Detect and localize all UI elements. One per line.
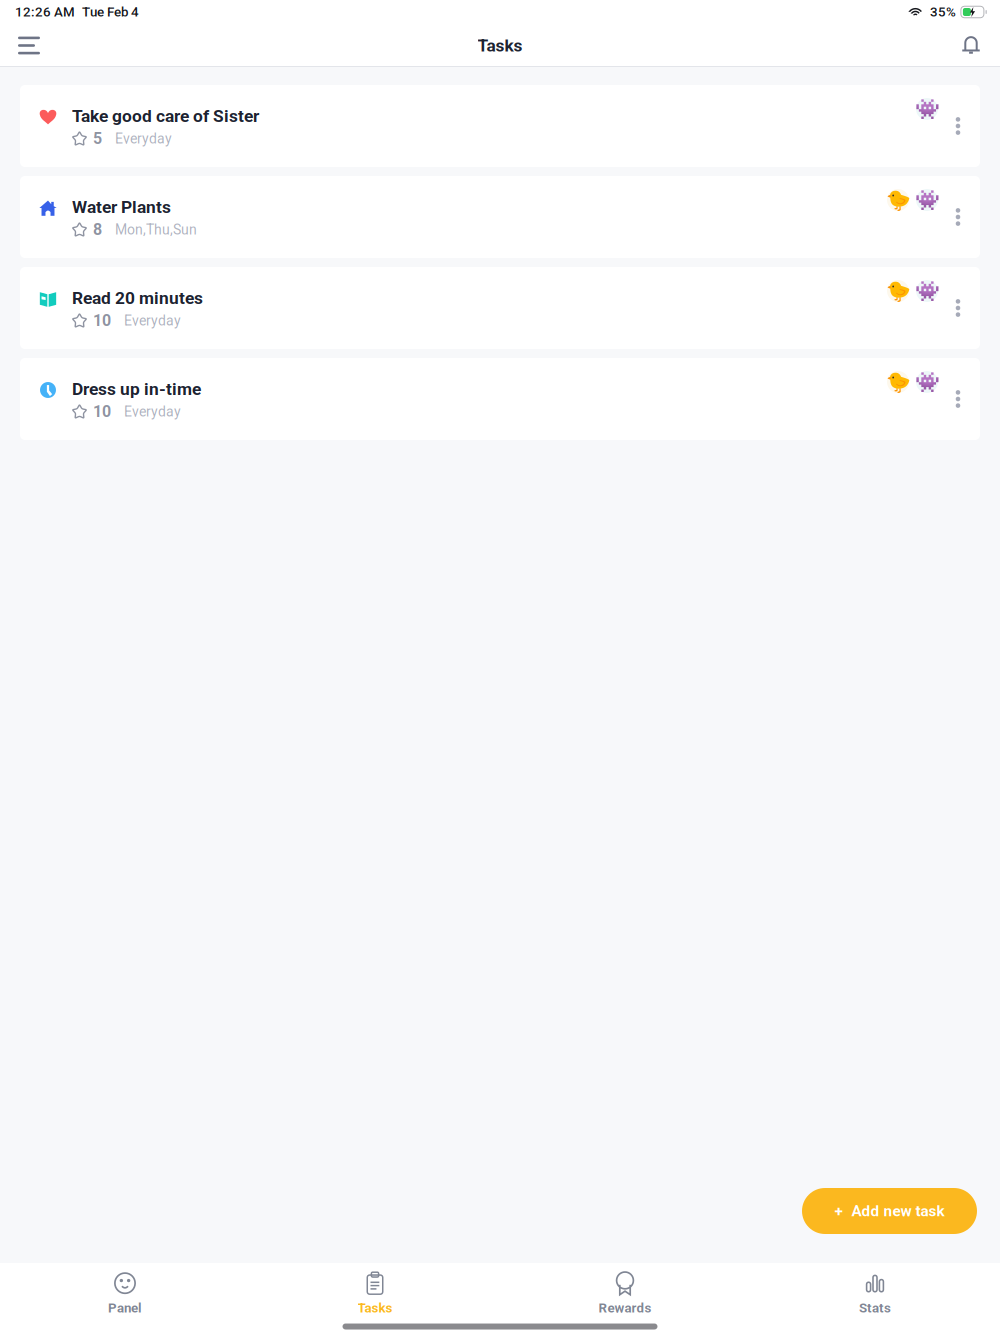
staticText: 5 xyxy=(93,129,102,148)
staticText: Tasks xyxy=(477,35,522,56)
button[interactable]: Water Plants xyxy=(20,176,980,258)
staticText: 8 xyxy=(93,220,102,239)
staticText: 12:26 AM xyxy=(15,4,75,20)
button[interactable]: More options xyxy=(942,377,974,421)
button[interactable]: Panel xyxy=(0,1271,250,1314)
staticText: 👾 xyxy=(914,98,939,120)
staticText: Mon,Thu,Sun xyxy=(115,221,197,238)
button[interactable]: Menu xyxy=(7,24,51,67)
button[interactable]: Rewards xyxy=(500,1271,750,1314)
staticText: 👾 xyxy=(914,371,939,393)
staticText: 🐤 xyxy=(885,189,910,211)
button[interactable]: Notifications xyxy=(949,24,993,67)
button[interactable]: More options xyxy=(942,195,974,239)
button[interactable]: Read 20 minutes xyxy=(20,267,980,349)
staticText: Water Plants xyxy=(72,197,171,217)
staticText: Read 20 minutes xyxy=(72,288,203,308)
staticText: + xyxy=(834,1202,842,1220)
button[interactable]: Stats xyxy=(750,1271,1000,1314)
staticText: 10 xyxy=(93,311,111,330)
button[interactable]: Tasks xyxy=(250,1271,500,1314)
button[interactable]: + xyxy=(802,1188,977,1234)
staticText: Stats xyxy=(859,1300,891,1316)
button[interactable]: More options xyxy=(942,104,974,148)
staticText: Add new task xyxy=(851,1202,944,1220)
staticText: 🐤 xyxy=(885,280,910,302)
staticText: Tue Feb 4 xyxy=(82,4,139,20)
staticText: Dress up in-time xyxy=(72,379,201,399)
staticText: Everyday xyxy=(115,130,172,147)
staticText: Rewards xyxy=(598,1300,651,1316)
button[interactable]: Dress up in-time xyxy=(20,358,980,440)
staticText: 35% xyxy=(930,4,956,20)
staticText: Tasks xyxy=(357,1300,392,1316)
staticText: Panel xyxy=(108,1300,142,1316)
staticText: Everyday xyxy=(124,312,181,329)
button[interactable]: Take good care of Sister xyxy=(20,85,980,167)
staticText: 10 xyxy=(93,402,111,421)
staticText: 🐤 xyxy=(885,371,910,393)
staticText: Everyday xyxy=(124,403,181,420)
button[interactable]: More options xyxy=(942,286,974,330)
staticText: 👾 xyxy=(914,280,939,302)
staticText: 👾 xyxy=(914,189,939,211)
staticText: Take good care of Sister xyxy=(72,106,259,126)
